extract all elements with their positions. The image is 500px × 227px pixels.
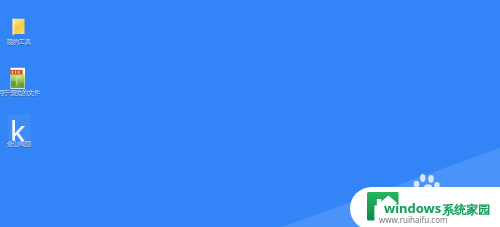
button[interactable]: 金山截图 [0,116,43,154]
button[interactable]: 用于预览的文件 [0,65,43,103]
staticText: 我的工具 [0,39,43,47]
staticText: k [10,111,26,141]
staticText: 用于预览的文件 [0,89,43,97]
button[interactable]: windows系统家园 www.ruihaifu.com [350,187,500,227]
button[interactable]: 我的工具 folder [0,16,43,52]
staticText: 系统家园 [442,202,490,217]
staticText: 金山截图 [0,141,43,149]
staticText: 用于预览的文件 [0,90,43,98]
staticText: www.ruihaifu.com [379,214,448,225]
staticText: windows [384,199,442,217]
staticText: 我的工具 [0,38,43,46]
staticText: 金山截图 [0,140,43,148]
